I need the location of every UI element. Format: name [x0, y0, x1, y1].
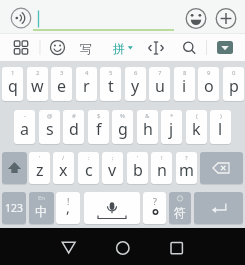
button[interactable]: [217, 41, 233, 54]
button[interactable]: [49, 232, 89, 263]
staticText: 7: [158, 69, 162, 77]
staticText: 拼: [113, 41, 125, 56]
staticText: -: [24, 112, 26, 120]
button[interactable]: !: [56, 192, 80, 224]
staticText: :: [88, 154, 90, 162]
staticText: 3: [60, 69, 64, 77]
button[interactable]: [157, 232, 197, 263]
button[interactable]: 1: [2, 67, 23, 101]
staticText: %: [120, 112, 125, 120]
button[interactable]: ': [29, 152, 50, 184]
button[interactable]: 符: [169, 192, 191, 224]
staticText: l: [218, 118, 223, 140]
staticText: y: [131, 75, 140, 97]
staticText: !: [67, 195, 70, 207]
staticText: 写: [80, 41, 92, 56]
staticText: f: [96, 118, 102, 140]
staticText: k: [192, 118, 201, 140]
staticText: $: [97, 112, 101, 120]
button[interactable]: [212, 4, 240, 32]
staticText: 1: [11, 69, 15, 77]
button[interactable]: ': [127, 152, 148, 184]
button[interactable]: @: [39, 110, 60, 144]
staticText: 123: [5, 201, 24, 215]
button[interactable]: 0: [223, 67, 244, 101]
button[interactable]: -: [14, 110, 35, 144]
staticText: m: [179, 159, 194, 181]
button[interactable]: En: [29, 192, 54, 224]
staticText: r: [83, 75, 90, 97]
staticText: w: [31, 75, 44, 97]
staticText: n: [157, 159, 167, 181]
button[interactable]: [103, 232, 143, 263]
staticText: p: [229, 75, 239, 97]
staticText: #: [72, 112, 76, 120]
button[interactable]: 9: [198, 67, 219, 101]
button[interactable]: 写: [75, 36, 97, 60]
button[interactable]: ?: [143, 192, 166, 224]
button[interactable]: $: [88, 110, 109, 144]
button[interactable]: [9, 35, 33, 59]
button[interactable]: 5: [100, 67, 121, 101]
staticText: ': [39, 154, 41, 162]
button[interactable]: 4: [76, 67, 97, 101]
staticText: h: [143, 118, 153, 140]
button[interactable]: [144, 36, 168, 60]
button[interactable]: !: [151, 152, 172, 184]
staticText: i: [182, 75, 187, 97]
button[interactable]: ?: [176, 152, 197, 184]
staticText: ?: [185, 154, 188, 162]
button[interactable]: 123: [2, 192, 26, 224]
button[interactable]: :: [78, 152, 99, 184]
staticText: 4: [85, 69, 89, 77]
button[interactable]: [45, 35, 70, 60]
staticText: b: [133, 159, 143, 181]
staticText: c: [85, 159, 93, 181]
staticText: d: [69, 118, 79, 140]
staticText: j: [169, 118, 174, 140]
staticText: &: [145, 112, 150, 120]
button[interactable]: [182, 4, 210, 32]
button[interactable]: 拼: [111, 36, 137, 60]
button[interactable]: [177, 36, 201, 60]
button[interactable]: [194, 192, 243, 224]
staticText: s: [46, 118, 54, 140]
button[interactable]: (: [186, 110, 207, 144]
button[interactable]: ;: [102, 152, 123, 184]
staticText: ): [220, 112, 222, 120]
staticText: En: [38, 194, 46, 202]
button[interactable]: [200, 152, 243, 184]
button[interactable]: /: [53, 152, 74, 184]
button[interactable]: 3: [51, 67, 72, 101]
button[interactable]: %: [112, 110, 133, 144]
staticText: a: [20, 118, 29, 140]
button[interactable]: *: [161, 110, 182, 144]
button[interactable]: 8: [174, 67, 195, 101]
button[interactable]: #: [63, 110, 84, 144]
staticText: v: [108, 159, 117, 181]
button[interactable]: [7, 4, 35, 32]
staticText: ?: [153, 195, 157, 207]
staticText: g: [118, 118, 128, 140]
button[interactable]: 7: [149, 67, 170, 101]
staticText: o: [204, 75, 214, 97]
staticText: @: [47, 112, 53, 120]
staticText: u: [155, 75, 165, 97]
staticText: 0: [232, 69, 236, 77]
staticText: q: [8, 75, 18, 97]
button[interactable]: [2, 152, 27, 184]
staticText: z: [36, 159, 44, 181]
staticText: 2: [36, 69, 40, 77]
staticText: 符: [174, 205, 186, 220]
staticText: t: [108, 75, 114, 97]
button[interactable]: 2: [27, 67, 48, 101]
button[interactable]: 6: [125, 67, 146, 101]
staticText: ': [137, 154, 139, 162]
button[interactable]: [84, 192, 140, 224]
staticText: 5: [109, 69, 113, 77]
button[interactable]: &: [137, 110, 158, 144]
button[interactable]: ): [210, 110, 231, 144]
staticText: e: [57, 75, 67, 97]
staticText: ;: [112, 154, 114, 162]
staticText: *: [170, 112, 174, 120]
